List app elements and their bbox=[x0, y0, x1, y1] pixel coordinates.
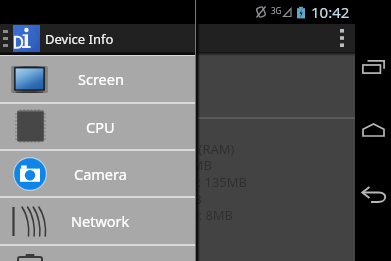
button[interactable]: Network bbox=[0, 198, 195, 244]
button[interactable]: Recent apps bbox=[355, 43, 391, 91]
staticText: Memory (RAM) bbox=[144, 140, 235, 158]
staticText: Internal: 2GB bbox=[121, 190, 202, 208]
button[interactable]: CPU bbox=[0, 104, 195, 149]
button[interactable]: Battery bbox=[0, 246, 195, 261]
staticText: CPU bbox=[86, 117, 115, 137]
staticText: Camera bbox=[74, 164, 127, 184]
staticText: 3G bbox=[271, 5, 282, 16]
button[interactable]: Home bbox=[355, 106, 391, 154]
button[interactable]: Screen bbox=[0, 56, 195, 102]
staticText: 10:42 bbox=[311, 2, 350, 22]
button[interactable]: Camera bbox=[0, 151, 195, 196]
staticText: Device Info bbox=[45, 30, 114, 48]
staticText: Free: 135MB bbox=[171, 173, 247, 191]
staticText: Total: 512MB bbox=[133, 156, 212, 174]
staticText: Free: 8MB bbox=[172, 206, 234, 224]
button[interactable]: Back bbox=[355, 171, 391, 219]
staticText: Screen bbox=[78, 69, 124, 89]
button[interactable]: More options bbox=[331, 24, 353, 52]
staticText: Network bbox=[71, 211, 130, 231]
